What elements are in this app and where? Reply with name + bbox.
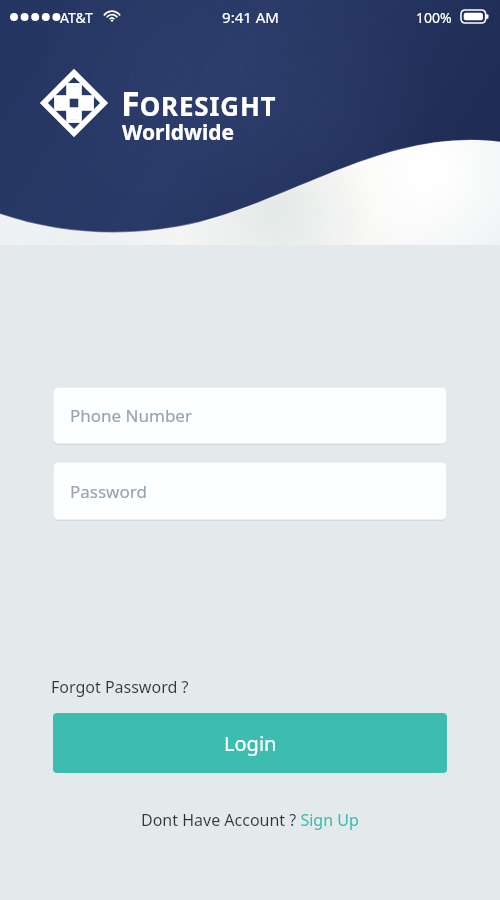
button[interactable]: Forgot Password ? <box>45 674 195 700</box>
staticText: FORESIGHT <box>121 80 277 126</box>
button[interactable]: Phone Number <box>53 387 447 444</box>
staticText: Forgot Password ? <box>51 676 189 698</box>
staticText: Phone Number <box>70 404 192 427</box>
button[interactable]: Dont Have Account ? Sign Up <box>135 806 365 834</box>
button[interactable]: Password <box>53 462 447 520</box>
button[interactable]: Login <box>53 713 447 773</box>
staticText: Login <box>224 730 277 757</box>
staticText: Dont Have Account ? Sign Up <box>141 809 359 831</box>
staticText: AT&T <box>60 8 93 27</box>
staticText: Worldwide <box>122 118 234 147</box>
other: Foresight Worldwide logo <box>40 69 108 137</box>
staticText: 9:41 AM <box>222 7 279 27</box>
staticText: Password <box>70 480 147 503</box>
staticText: 100% <box>416 8 452 27</box>
